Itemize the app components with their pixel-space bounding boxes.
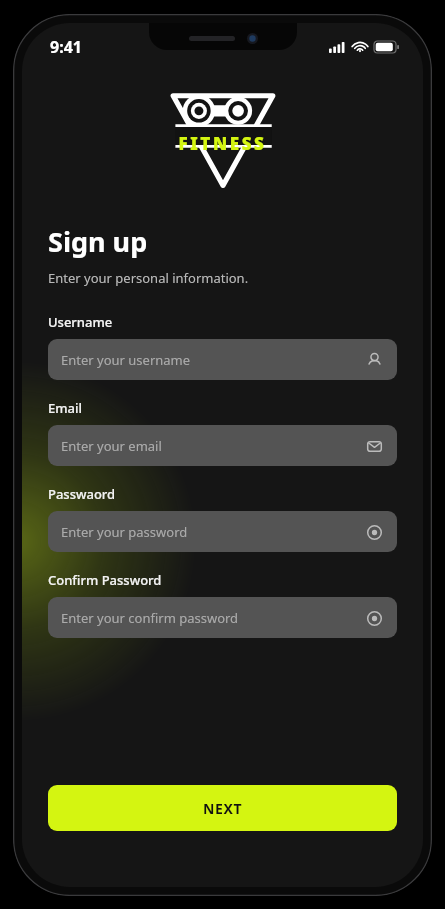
button[interactable]: Enter your email xyxy=(48,425,397,466)
staticText: FITNESS xyxy=(178,132,267,155)
staticText: Confirm Password xyxy=(48,571,162,589)
staticText: Enter your confirm password xyxy=(61,609,364,627)
staticText: Enter your email xyxy=(61,437,364,455)
staticText: Enter your password xyxy=(61,523,364,541)
button[interactable]: Enter your password xyxy=(48,511,397,552)
staticText: Enter your personal information. xyxy=(48,269,249,287)
button[interactable]: Enter your username xyxy=(48,339,397,380)
button[interactable]: Email xyxy=(364,436,384,456)
staticText: 9:41 xyxy=(50,36,82,58)
staticText: Email xyxy=(48,399,83,417)
staticText: Username xyxy=(48,313,113,331)
staticText: Sign up xyxy=(48,223,148,260)
button[interactable]: NEXT xyxy=(48,785,397,831)
button[interactable]: Account xyxy=(364,350,384,370)
button[interactable]: Show password xyxy=(364,522,384,542)
staticText: Passwaord xyxy=(48,485,116,503)
staticText: NEXT xyxy=(203,799,243,818)
button[interactable]: Show password xyxy=(364,608,384,628)
button[interactable]: Enter your confirm password xyxy=(48,597,397,638)
staticText: Enter your username xyxy=(61,351,364,369)
